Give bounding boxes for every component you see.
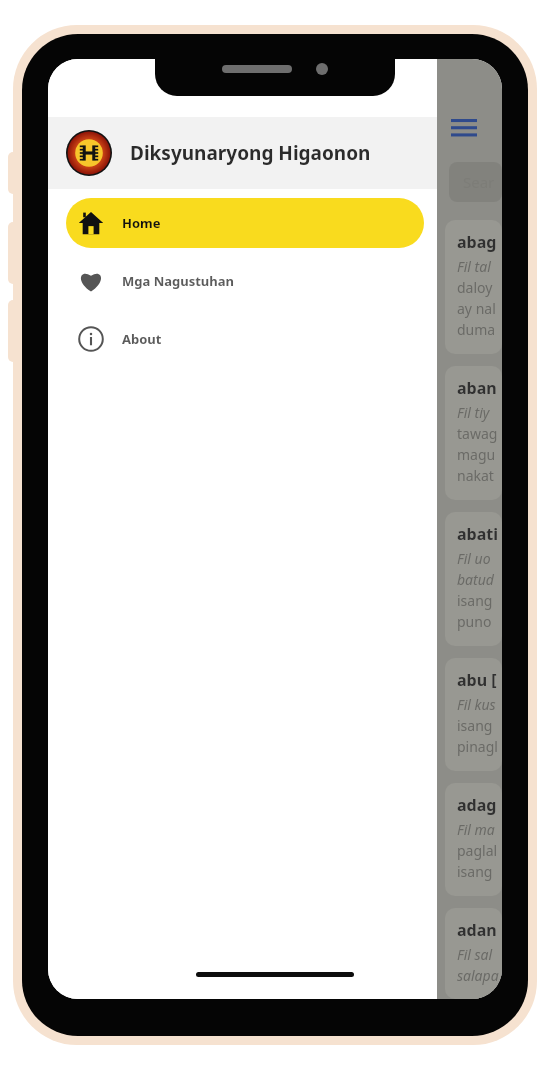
staticText: aban [457, 377, 497, 399]
staticText: salapa [457, 966, 499, 985]
staticText: Fil uo [457, 549, 491, 568]
staticText: Mga Nagustuhan [122, 272, 234, 290]
staticText: batud [457, 570, 494, 589]
staticText: tawag [457, 424, 498, 443]
staticText: adan [457, 919, 497, 941]
staticText: paglal [457, 841, 498, 860]
staticText: Diksyunaryong Higaonon [130, 140, 371, 166]
staticText: abati [457, 523, 499, 545]
staticText: Fil ma [457, 820, 495, 839]
other: Mga Nagustuhan [78, 268, 104, 294]
staticText: isang [457, 716, 493, 735]
other: Home [78, 210, 104, 236]
staticText: ay nal [457, 299, 496, 318]
staticText: Fil tiy [457, 403, 490, 422]
staticText: duma [457, 320, 496, 339]
staticText: Home [122, 214, 161, 232]
other: About [78, 326, 104, 352]
staticText: daloy [457, 278, 493, 297]
staticText: isang [457, 591, 493, 610]
staticText: isang [457, 862, 493, 881]
button[interactable]: About [48, 314, 437, 364]
staticText: magu [457, 445, 496, 464]
staticText: abu [ [457, 669, 497, 691]
staticText: About [122, 330, 162, 348]
staticText: Fil tal [457, 257, 491, 276]
staticText: Fil sal [457, 945, 493, 964]
staticText: adag [457, 794, 497, 816]
staticText: nakat [457, 466, 494, 485]
button[interactable]: Home [66, 198, 424, 248]
button[interactable]: Mga Nagustuhan [48, 256, 437, 306]
staticText: puno [457, 612, 492, 631]
staticText: abag [457, 231, 497, 253]
staticText: pinagl [457, 737, 498, 756]
staticText: Fil kus [457, 695, 496, 714]
